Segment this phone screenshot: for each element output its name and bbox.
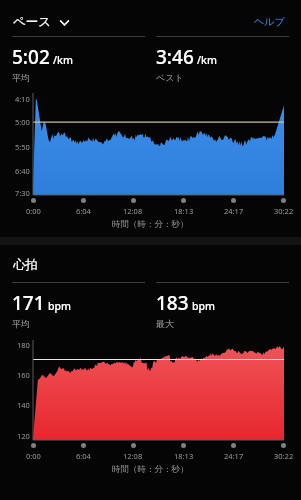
staticText: 6:40 — [15, 166, 30, 176]
staticText: 0:00 — [26, 206, 41, 216]
staticText: 5:00 — [15, 117, 30, 127]
staticText: 平均 — [12, 318, 30, 329]
staticText: ペース — [13, 14, 52, 30]
staticText: 5:02 — [12, 44, 50, 70]
staticText: 6:04 — [76, 451, 91, 461]
staticText: 12:08 — [123, 206, 143, 216]
staticText: 160 — [17, 370, 30, 380]
button[interactable]: ペース — [13, 12, 74, 32]
staticText: 171 — [12, 290, 45, 316]
button[interactable]: ヘルプ — [250, 11, 289, 32]
staticText: 180 — [17, 340, 30, 350]
staticText: 12:08 — [123, 451, 143, 461]
staticText: 心拍 — [13, 257, 38, 273]
staticText: 183 — [156, 290, 189, 316]
button[interactable]: 心拍 — [13, 257, 38, 273]
staticText: 18:13 — [174, 451, 194, 461]
staticText: 7:30 — [15, 188, 30, 198]
staticText: 0:00 — [26, 451, 41, 461]
staticText: ベスト — [156, 72, 184, 83]
staticText: 30:22 — [274, 451, 294, 461]
staticText: 3:46 — [156, 44, 194, 70]
staticText: 5:50 — [15, 142, 30, 152]
staticText: 120 — [17, 431, 30, 441]
staticText: /km — [197, 53, 217, 67]
staticText: 24:17 — [224, 451, 244, 461]
staticText: 30:22 — [274, 206, 294, 216]
staticText: 18:13 — [174, 206, 194, 216]
staticText: bpm — [48, 299, 71, 313]
staticText: bpm — [192, 299, 215, 313]
other: Expand — [59, 17, 70, 28]
staticText: 140 — [17, 400, 30, 410]
staticText: /km — [53, 53, 73, 67]
staticText: 6:04 — [76, 206, 91, 216]
staticText: 時間（時：分：秒） — [112, 464, 189, 475]
staticText: ヘルプ — [254, 15, 285, 28]
staticText: 24:17 — [224, 206, 244, 216]
staticText: 平均 — [12, 72, 30, 83]
staticText: 4:10 — [15, 94, 30, 104]
staticText: 時間（時：分：秒） — [112, 219, 189, 230]
staticText: 最大 — [156, 318, 174, 329]
